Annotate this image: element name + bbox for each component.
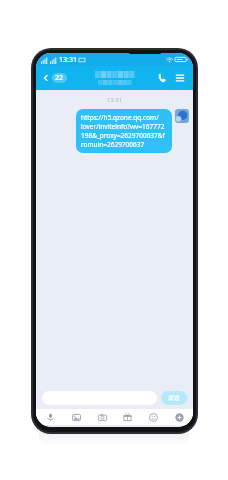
button[interactable]: Menu	[171, 69, 189, 87]
button[interactable]: Gift	[119, 409, 135, 425]
button[interactable]: https://h5.qzone.qq.com/lover/inviteinfo…	[76, 109, 172, 153]
staticText: 22	[55, 73, 64, 83]
staticText: 13:31	[36, 96, 193, 104]
button[interactable]: Back, 22 unread	[39, 70, 70, 86]
staticText: 发送	[168, 394, 180, 402]
button[interactable]: More	[171, 409, 187, 425]
button[interactable]: Emoji	[145, 409, 161, 425]
button[interactable]: Photos	[68, 409, 84, 425]
button[interactable]: Camera	[94, 409, 110, 425]
button[interactable]: 发送	[161, 391, 187, 405]
button[interactable]: Call	[153, 69, 171, 87]
button[interactable]: Voice message	[42, 409, 58, 425]
staticText: 13:31	[59, 55, 77, 65]
button[interactable]: Avatar	[175, 109, 189, 123]
button[interactable]: Message input	[42, 391, 157, 405]
staticText: https://h5.qzone.qq.com/lover/inviteinfo…	[81, 113, 167, 149]
